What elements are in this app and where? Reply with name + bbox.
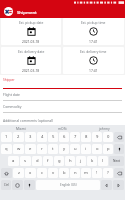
staticText: johnny <box>99 126 110 130</box>
staticText: Est. delivery time <box>80 49 107 53</box>
button[interactable]: 7 <box>70 132 80 142</box>
staticText: z <box>18 170 20 176</box>
staticText: mOSt <box>58 126 67 130</box>
button[interactable]: v <box>48 168 58 178</box>
button[interactable]: b <box>59 168 69 178</box>
button[interactable]: u <box>70 144 80 154</box>
button[interactable]: johnny <box>83 125 125 131</box>
button[interactable]: 8 <box>81 132 91 142</box>
button[interactable]: 3 <box>25 132 36 142</box>
staticText: 2021-03-18 <box>22 68 40 72</box>
button[interactable]: q <box>1 144 12 154</box>
button[interactable]: Next <box>109 156 124 166</box>
staticText: 17:41 <box>89 68 98 72</box>
staticText: m <box>84 170 88 176</box>
staticText: 7 <box>74 134 77 140</box>
button[interactable]: s <box>20 156 31 166</box>
button[interactable]: 9 <box>92 132 102 142</box>
button[interactable]: a <box>8 156 19 166</box>
staticText: j <box>80 158 82 164</box>
button[interactable]: Ctrl <box>1 180 11 190</box>
staticText: f <box>47 158 49 164</box>
staticText: Est. pickup date <box>19 20 44 24</box>
button[interactable]: 4 <box>37 132 47 142</box>
staticText: p <box>107 146 110 152</box>
staticText: 2 <box>17 134 20 140</box>
staticText: Next <box>113 159 120 163</box>
staticText: Flight date <box>3 92 20 97</box>
staticText: ! <box>96 170 98 176</box>
button[interactable]: n <box>70 168 80 178</box>
staticText: Shipper <box>3 78 15 82</box>
button[interactable]: Est. pickup time <box>63 18 124 45</box>
button[interactable]: Miami <box>0 125 41 131</box>
staticText: o <box>96 146 99 152</box>
button[interactable]: 2 <box>13 132 24 142</box>
button[interactable]: i <box>81 144 91 154</box>
button[interactable]: Move cursor right <box>113 180 124 190</box>
staticText: 9 <box>96 134 99 140</box>
button[interactable]: g <box>54 156 64 166</box>
button[interactable]: j <box>76 156 86 166</box>
button[interactable]: 5 <box>48 132 58 142</box>
button[interactable]: o <box>92 144 102 154</box>
staticText: 0 <box>107 134 110 140</box>
staticText: 8 <box>85 134 88 140</box>
button[interactable]: f <box>43 156 53 166</box>
button[interactable]: m <box>81 168 91 178</box>
button[interactable]: Commodity <box>3 101 122 113</box>
button[interactable]: p <box>103 144 113 154</box>
button[interactable]: English (US) <box>36 180 100 190</box>
button[interactable]: r <box>37 144 47 154</box>
staticText: g <box>58 158 61 164</box>
button[interactable]: Est. pickup date <box>1 18 61 45</box>
button[interactable]: w <box>13 144 24 154</box>
staticText: 6 <box>63 134 66 140</box>
button[interactable]: Emoji <box>12 180 23 190</box>
staticText: v <box>52 170 55 176</box>
staticText: r <box>41 146 43 152</box>
staticText: u <box>74 146 77 152</box>
button[interactable]: Est. delivery date <box>1 47 61 74</box>
button[interactable]: Voice input <box>24 180 35 190</box>
button[interactable]: t <box>48 144 58 154</box>
button[interactable]: 0 <box>103 132 113 142</box>
staticText: s <box>24 158 27 164</box>
button[interactable]: Voice typing <box>114 144 124 154</box>
button[interactable]: x <box>25 168 36 178</box>
button[interactable]: 1 <box>1 132 12 142</box>
button[interactable]: Est. delivery time <box>63 47 124 74</box>
staticText: ? <box>107 170 109 176</box>
staticText: c <box>41 170 44 176</box>
button[interactable]: Move cursor left <box>101 180 112 190</box>
button[interactable]: d <box>32 156 42 166</box>
button[interactable]: z <box>13 168 24 178</box>
button[interactable]: Flight date <box>3 89 122 101</box>
button[interactable]: k <box>87 156 97 166</box>
button[interactable]: Shipper <box>3 78 122 89</box>
staticText: 5 <box>52 134 55 140</box>
button[interactable]: 6 <box>59 132 69 142</box>
button[interactable]: y <box>59 144 69 154</box>
button[interactable]: l <box>98 156 108 166</box>
button[interactable]: Shift <box>1 168 12 178</box>
staticText: 4 <box>41 134 44 140</box>
button[interactable]: ? <box>103 168 113 178</box>
button[interactable]: App logo <box>4 7 13 16</box>
staticText: x <box>29 170 32 176</box>
staticText: Est. pickup time <box>81 20 106 24</box>
staticText: Miami <box>16 126 26 130</box>
staticText: y <box>63 146 66 152</box>
staticText: 2021-03-18 <box>22 39 40 43</box>
staticText: 1 <box>5 134 8 140</box>
button[interactable]: c <box>37 168 47 178</box>
button[interactable]: Backspace <box>114 132 124 142</box>
staticText: Est. delivery date <box>18 49 45 53</box>
staticText: b <box>63 170 66 176</box>
button[interactable]: e <box>25 144 36 154</box>
button[interactable]: h <box>65 156 75 166</box>
button[interactable]: ! <box>92 168 102 178</box>
button[interactable]: Backspace <box>114 168 124 178</box>
staticText: 3 <box>29 134 32 140</box>
button[interactable]: mOSt <box>41 125 83 131</box>
